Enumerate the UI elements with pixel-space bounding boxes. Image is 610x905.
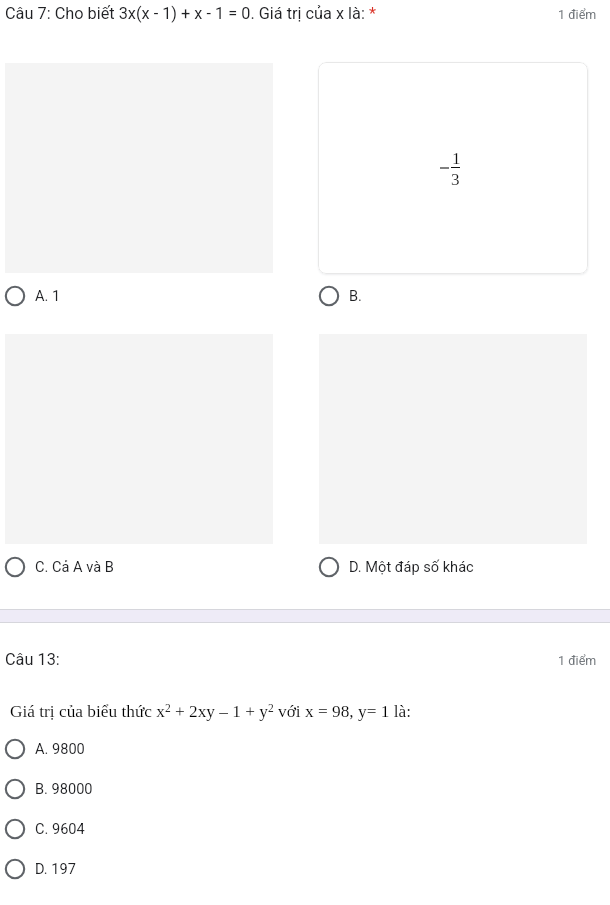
staticText: D. 197	[35, 860, 76, 877]
button[interactable]: A. 9800	[0, 734, 300, 764]
staticText: D. Một đáp số khác	[349, 558, 474, 575]
staticText: Giá trị của biểu thức x2 + 2xy – 1 + y2 …	[10, 702, 411, 721]
staticText: 1 điểm	[558, 7, 597, 22]
button[interactable]: Answer B image: minus one third	[318, 62, 588, 274]
staticText: A. 9800	[35, 740, 85, 757]
staticText: B. 98000	[35, 780, 93, 797]
button[interactable]: B. 98000	[0, 774, 300, 804]
staticText: 1 điểm	[558, 653, 597, 668]
button[interactable]: D. 197	[0, 854, 300, 884]
staticText: A. 1	[35, 287, 61, 304]
button[interactable]: C. Cả A và B	[0, 552, 300, 582]
staticText: B.	[349, 287, 362, 304]
staticText: Câu 7: Cho biết 3x(x - 1) + x - 1 = 0. G…	[5, 4, 376, 23]
staticText: C. 9604	[35, 820, 85, 837]
button[interactable]: C. 9604	[0, 814, 300, 844]
button[interactable]: D. Một đáp số khác	[314, 552, 594, 582]
button[interactable]: B.	[314, 281, 594, 311]
staticText: C. Cả A và B	[35, 558, 114, 575]
staticText: 1	[452, 149, 461, 168]
staticText: Câu 13:	[5, 650, 60, 669]
button[interactable]: A. 1	[0, 281, 300, 311]
staticText: 3	[451, 170, 460, 189]
